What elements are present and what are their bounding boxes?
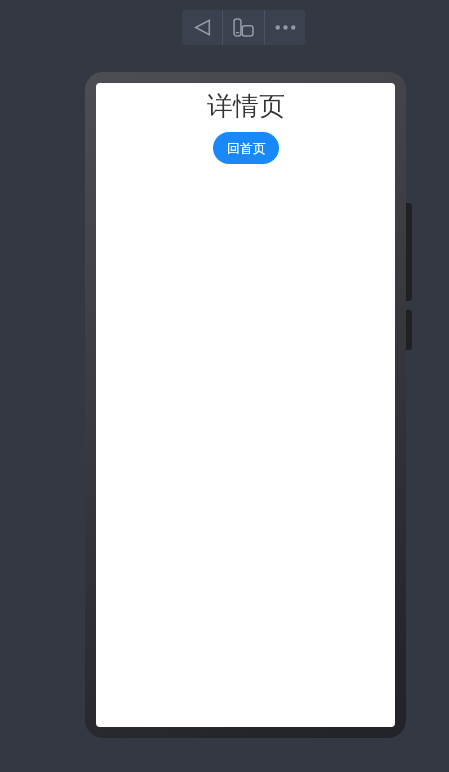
button[interactable]: Volume <box>400 203 412 301</box>
button[interactable]: Back <box>182 10 222 45</box>
button[interactable]: 回首页 <box>213 132 279 164</box>
button[interactable]: More options <box>265 10 305 45</box>
staticText: 详情页 <box>207 90 285 123</box>
button[interactable]: Power <box>400 310 412 350</box>
staticText: 回首页 <box>227 140 266 156</box>
button[interactable]: Rotate screen <box>223 10 264 45</box>
